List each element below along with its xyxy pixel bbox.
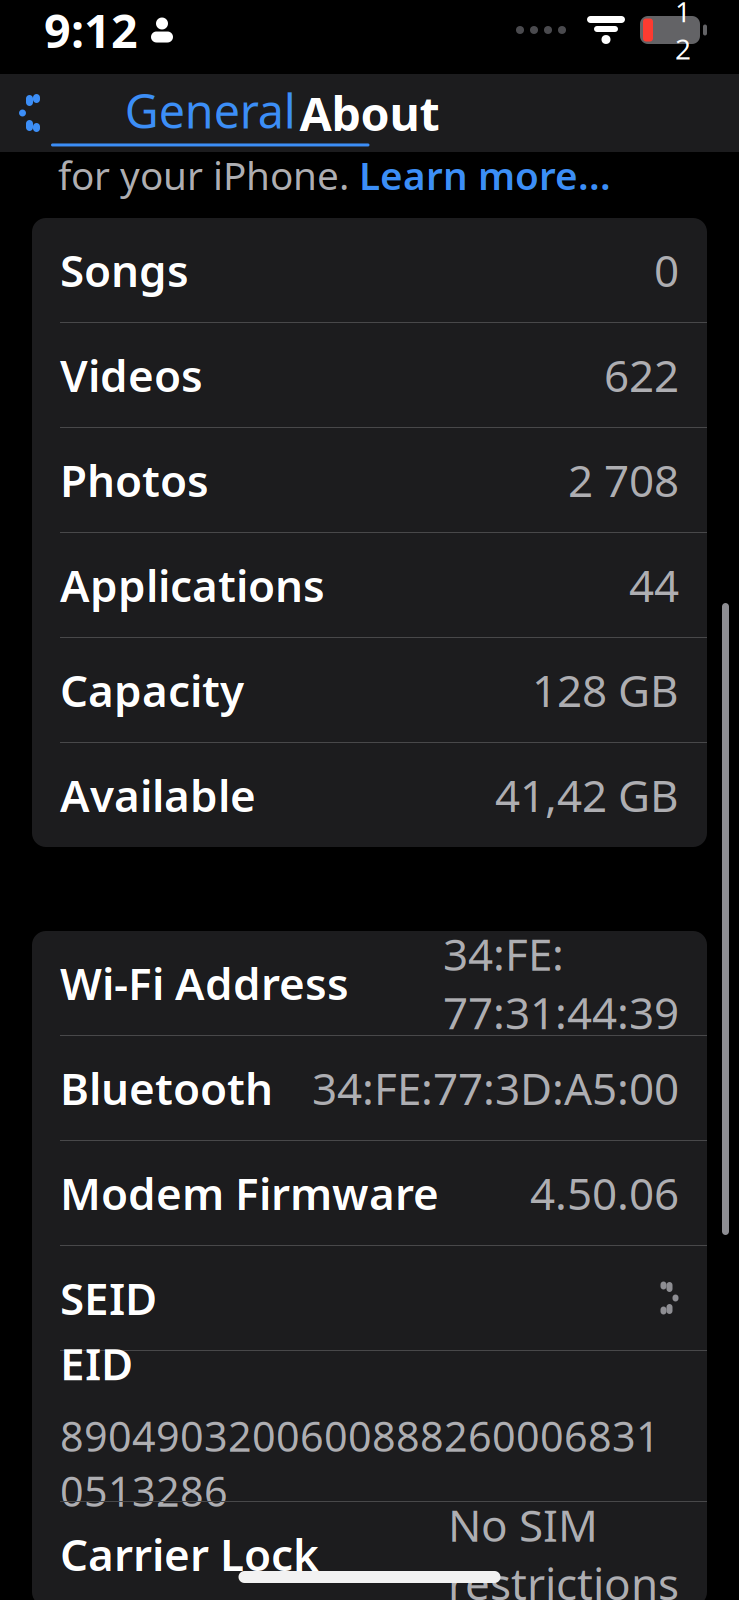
- button[interactable]: SEID: [32, 1246, 707, 1350]
- staticText: 622: [604, 346, 679, 404]
- staticText: EID: [60, 1334, 133, 1392]
- staticText: 128 GB: [532, 661, 679, 719]
- staticText: Wi-Fi Address: [60, 954, 349, 1012]
- staticText: No SIM restrictions: [448, 1496, 679, 1600]
- staticText: 2 708: [568, 451, 679, 509]
- staticText: 34:FE:77:3D:A5:00: [312, 1059, 679, 1117]
- button[interactable]: General: [0, 69, 369, 156]
- button[interactable]: Learn more...: [359, 149, 611, 201]
- staticText: Applications: [60, 556, 325, 614]
- staticText: 4.50.06: [530, 1164, 679, 1222]
- staticText: Learn more...: [359, 149, 611, 201]
- staticText: 41,42 GB: [495, 766, 679, 824]
- staticText: Videos: [60, 346, 203, 404]
- staticText: General: [125, 79, 296, 141]
- staticText: 89049032006008882600068310513286: [60, 1408, 660, 1518]
- staticText: 9:12: [44, 0, 138, 61]
- staticText: Songs: [60, 241, 189, 299]
- staticText: Carrier Lock: [60, 1525, 319, 1583]
- staticText: 0: [654, 241, 679, 299]
- staticText: for your iPhone.: [58, 149, 359, 201]
- staticText: Bluetooth: [60, 1059, 273, 1117]
- staticText: Photos: [60, 451, 209, 509]
- staticText: 44: [629, 556, 679, 614]
- staticText: SEID: [60, 1269, 157, 1327]
- staticText: Available: [60, 766, 256, 824]
- staticText: About: [299, 82, 439, 144]
- staticText: Modem Firmware: [60, 1164, 439, 1222]
- staticText: Capacity: [60, 661, 244, 719]
- staticText: 12: [675, 0, 691, 67]
- staticText: 34:FE:77:31:44:39: [443, 925, 679, 1041]
